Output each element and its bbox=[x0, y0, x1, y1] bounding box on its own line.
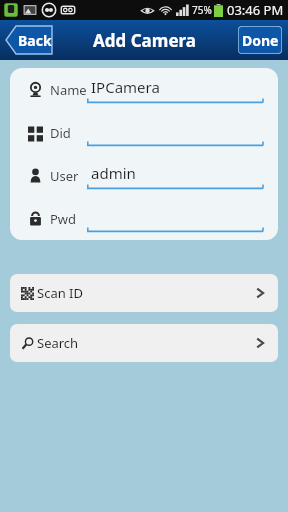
staticText: Pwd bbox=[50, 210, 77, 228]
staticText: Name bbox=[50, 81, 87, 99]
staticText: 75% bbox=[192, 3, 212, 17]
staticText: User bbox=[50, 167, 79, 185]
staticText: 03:46 PM bbox=[227, 1, 284, 19]
staticText: Scan ID bbox=[37, 284, 83, 302]
button[interactable]: Name bbox=[10, 68, 278, 111]
staticText: Done bbox=[242, 31, 279, 50]
button[interactable]: Back bbox=[5, 26, 55, 54]
button[interactable]: Search bbox=[10, 324, 278, 362]
staticText: Search bbox=[37, 334, 79, 352]
button[interactable]: Done bbox=[238, 26, 282, 54]
staticText: Did bbox=[50, 124, 71, 142]
staticText: IPCamera bbox=[91, 77, 160, 97]
staticText: admin bbox=[91, 163, 136, 183]
button[interactable]: User bbox=[10, 154, 278, 197]
staticText: Back bbox=[18, 31, 52, 50]
button[interactable]: Pwd bbox=[10, 197, 278, 240]
button[interactable]: Did bbox=[10, 111, 278, 154]
staticText: Add Camera bbox=[93, 29, 196, 52]
button[interactable]: Scan ID bbox=[10, 274, 278, 312]
